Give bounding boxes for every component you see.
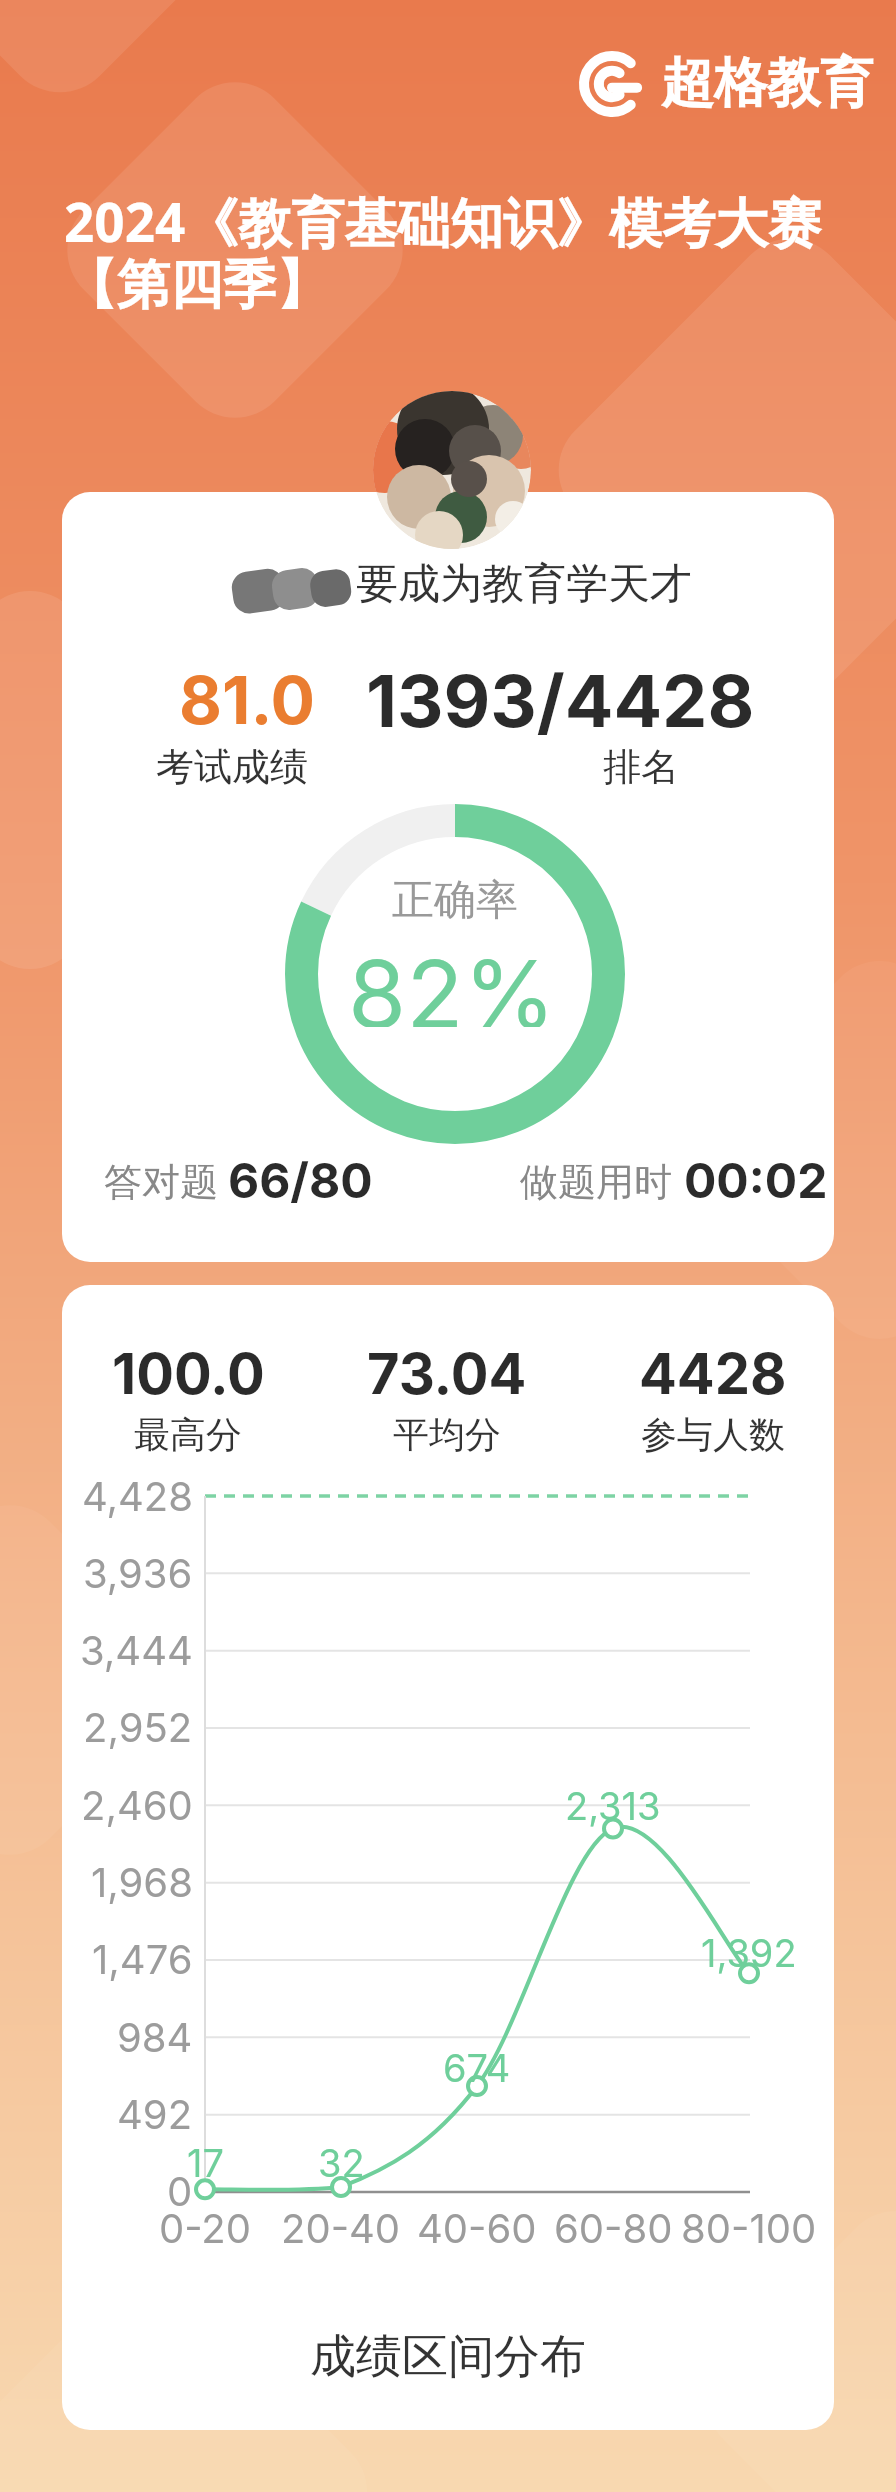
staticText: 平均分 [393,1412,501,1457]
staticText: 20-40 [281,2204,401,2252]
staticText: 3,444 [80,1626,193,1674]
staticText: 2024《教育基础知识》模考大赛 [64,185,822,257]
staticText: 1,476 [92,1935,193,1983]
staticText: 100.0 [112,1340,265,1408]
staticText: 1,392 [701,1930,797,1976]
staticText: 0-20 [159,2204,251,2252]
staticText: 超格教育 [661,50,873,117]
staticText: 参与人数 [641,1412,785,1457]
button[interactable]: 超格教育 [579,50,873,117]
staticText: 17 [187,2140,224,2186]
staticText: 4428 [639,1340,787,1408]
staticText: 【第四季】 [64,252,329,319]
staticText: 984 [117,2013,193,2061]
staticText: 32 [318,2140,365,2186]
staticText: 81.0 [179,660,316,740]
staticText: 82% [348,937,556,1027]
staticText: 492 [117,2090,193,2138]
staticText: 2,460 [81,1781,193,1829]
staticText: 0 [167,2167,193,2215]
staticText: 2,313 [565,1783,661,1829]
staticText: 60-80 [554,2204,673,2252]
staticText: 2,952 [83,1703,193,1751]
staticText: 1393/4428 [366,657,755,744]
staticText: 做题用时 [520,1158,672,1206]
staticText: 考试成绩 [156,743,308,791]
staticText: 排名 [603,743,679,791]
staticText: 00:02 [684,1151,828,1209]
staticText: 3,936 [83,1549,193,1597]
staticText: 答对题 [104,1158,218,1206]
staticText: 要成为教育学天才 [356,558,692,611]
staticText: 成绩区间分布 [310,2328,586,2386]
staticText: 1,968 [91,1858,193,1906]
staticText: 正确率 [392,874,518,927]
staticText: 66/80 [228,1151,373,1209]
staticText: 674 [443,2045,511,2091]
staticText: 80-100 [681,2204,817,2252]
staticText: 40-60 [417,2204,537,2252]
staticText: 4,428 [82,1472,193,1520]
staticText: 最高分 [134,1412,242,1457]
staticText: 73.04 [367,1340,527,1408]
